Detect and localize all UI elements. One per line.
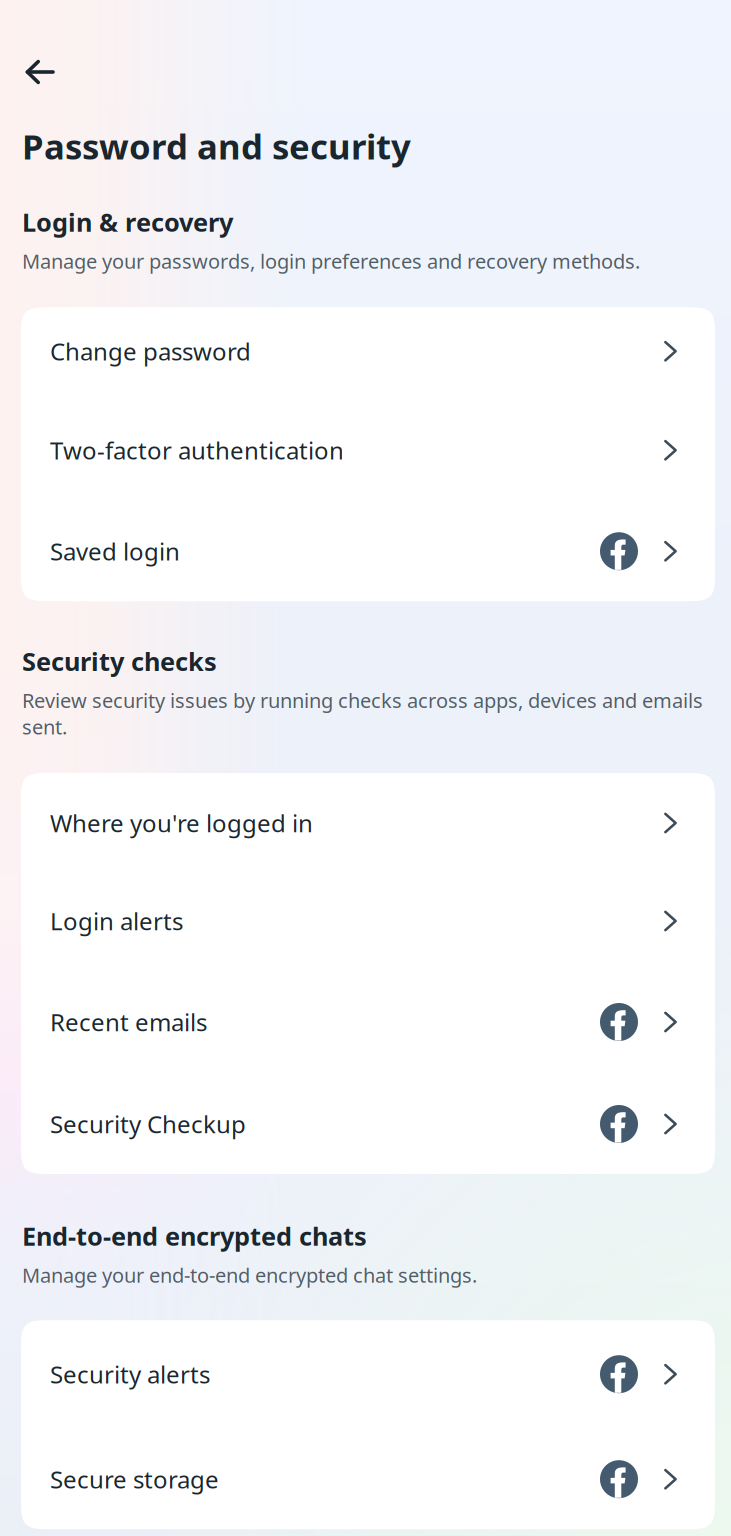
button[interactable]: Security alerts: [21, 1320, 715, 1425]
staticText: Security checks: [22, 644, 217, 678]
staticText: Manage your end-to-end encrypted chat se…: [22, 1262, 477, 1288]
staticText: Security Checkup: [50, 1108, 246, 1140]
staticText: Login alerts: [50, 905, 183, 937]
button[interactable]: Security Checkup: [21, 1076, 715, 1174]
staticText: Recent emails: [50, 1006, 207, 1038]
staticText: End-to-end encrypted chats: [22, 1219, 367, 1253]
staticText: Secure storage: [50, 1463, 219, 1495]
staticText: Password and security: [22, 123, 411, 169]
button[interactable]: Recent emails: [21, 972, 715, 1076]
button[interactable]: Change password: [21, 307, 715, 405]
button[interactable]: Secure storage: [21, 1425, 715, 1529]
staticText: Change password: [50, 335, 251, 367]
staticText: Review security issues by running checks…: [22, 687, 703, 740]
button[interactable]: Where you're logged in: [21, 773, 715, 872]
button[interactable]: Two-factor authentication: [21, 405, 715, 506]
staticText: Login & recovery: [22, 205, 233, 239]
staticText: Two-factor authentication: [50, 434, 344, 466]
staticText: Manage your passwords, login preferences…: [22, 248, 640, 274]
button[interactable]: Back: [0, 60, 69, 84]
staticText: Saved login: [50, 535, 180, 567]
button[interactable]: Login alerts: [21, 872, 715, 972]
staticText: Security alerts: [50, 1358, 210, 1390]
button[interactable]: Saved login: [21, 506, 715, 601]
staticText: Where you're logged in: [50, 807, 313, 839]
